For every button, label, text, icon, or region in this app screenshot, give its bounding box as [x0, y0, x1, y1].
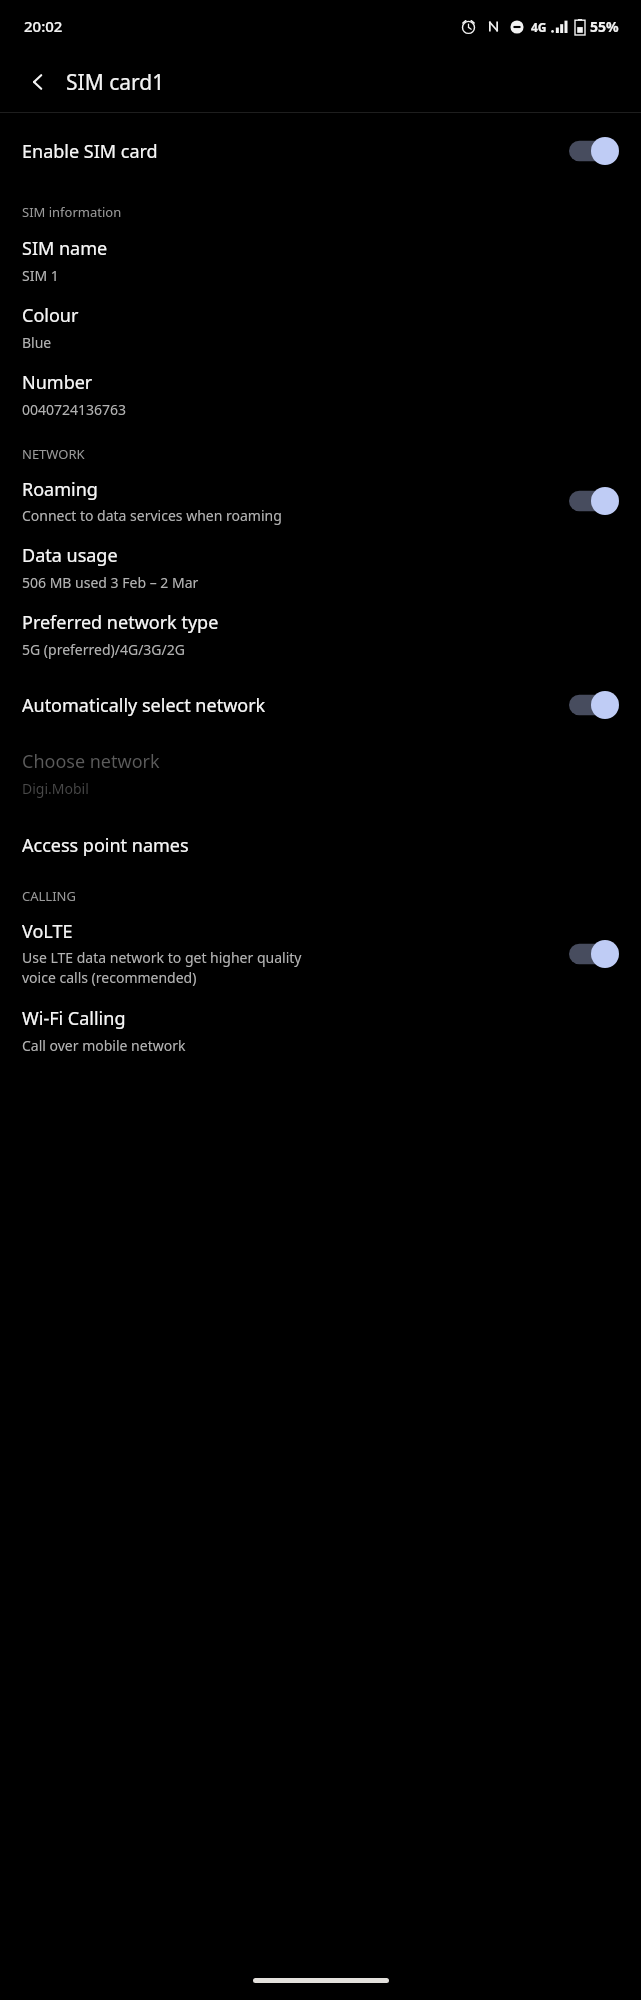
staticText: SIM name [22, 236, 108, 261]
button[interactable]: Number [0, 368, 641, 421]
staticText: 506 MB used 3 Feb – 2 Mar [22, 573, 199, 592]
button[interactable]: Automatically select network [0, 683, 641, 727]
staticText: Wi-Fi Calling [22, 1006, 126, 1031]
button[interactable]: Enable SIM card [0, 124, 641, 178]
staticText: 4G [531, 19, 547, 35]
button[interactable]: Roaming [0, 475, 641, 527]
staticText: Preferred network type [22, 610, 219, 635]
staticText: Blue [22, 333, 52, 352]
staticText: 5G (preferred)/4G/3G/2G [22, 640, 185, 659]
button[interactable]: VoLTE [0, 917, 641, 990]
staticText: Colour [22, 303, 79, 328]
staticText: 55% [590, 17, 619, 36]
button[interactable]: Colour [0, 301, 641, 354]
button[interactable]: Choose network [0, 747, 641, 800]
staticText: Connect to data services when roaming [22, 506, 282, 525]
staticText: 20:02 [24, 16, 63, 36]
button[interactable]: Access point names [0, 827, 641, 864]
staticText: SIM information [22, 203, 122, 221]
staticText: Enable SIM card [22, 139, 158, 164]
button[interactable]: Wi-Fi Calling [0, 1004, 641, 1057]
staticText: Automatically select network [22, 693, 266, 718]
staticText: VoLTE [22, 919, 73, 944]
staticText: 0040724136763 [22, 400, 127, 419]
staticText: NETWORK [22, 445, 85, 463]
staticText: Access point names [22, 833, 189, 858]
staticText: CALLING [22, 887, 76, 905]
staticText: Roaming [22, 477, 98, 502]
button[interactable]: Back [16, 60, 60, 104]
staticText: SIM 1 [22, 266, 59, 285]
staticText: Call over mobile network [22, 1036, 186, 1055]
staticText: Choose network [22, 749, 160, 774]
button[interactable]: Data usage [0, 541, 641, 594]
staticText: Data usage [22, 543, 118, 568]
button[interactable]: SIM name [0, 234, 641, 287]
staticText: Digi.Mobil [22, 779, 89, 798]
staticText: SIM card1 [66, 68, 165, 97]
button[interactable]: Preferred network type [0, 608, 641, 661]
staticText: Use LTE data network to get higher quali… [22, 948, 302, 988]
staticText: Number [22, 370, 93, 395]
